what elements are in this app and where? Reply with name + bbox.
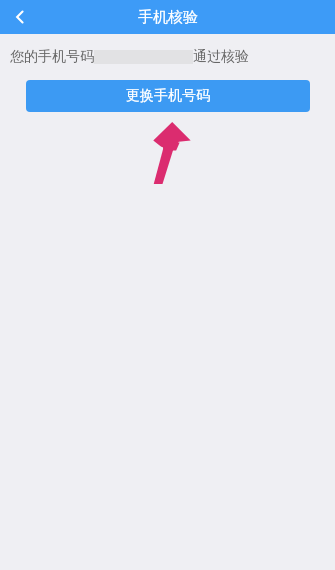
- button[interactable]: Back: [0, 0, 40, 34]
- staticText: 您的手机号码: [10, 48, 94, 66]
- staticText: 更换手机号码: [126, 87, 210, 105]
- staticText: 手机核验: [138, 8, 198, 27]
- button[interactable]: 更换手机号码: [26, 80, 310, 112]
- staticText: 通过核验: [193, 48, 249, 66]
